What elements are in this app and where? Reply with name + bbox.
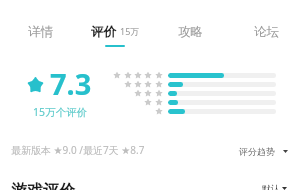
button[interactable]: 详情 xyxy=(3,0,79,46)
button[interactable]: 评分趋势 xyxy=(239,146,288,157)
button[interactable]: 默认 xyxy=(262,183,287,190)
staticText: 详情 xyxy=(28,24,54,40)
button[interactable]: 攻略 xyxy=(153,0,229,46)
button[interactable]: 论坛 xyxy=(229,0,304,46)
staticText: 7.3 xyxy=(50,64,92,103)
staticText: 游戏评价 xyxy=(11,181,75,190)
button[interactable]: 评价 xyxy=(77,0,153,46)
staticText: 评价 xyxy=(91,24,117,40)
staticText: 最新版本 ★9.0 /最近7天 ★8.7 xyxy=(11,143,145,157)
staticText: 15万个评价 xyxy=(33,105,88,119)
staticText: 默认 xyxy=(262,183,280,190)
staticText: 15万 xyxy=(120,25,140,37)
staticText: 攻略 xyxy=(178,24,204,40)
staticText: 论坛 xyxy=(254,24,280,40)
staticText: 评分趋势 xyxy=(239,146,275,157)
